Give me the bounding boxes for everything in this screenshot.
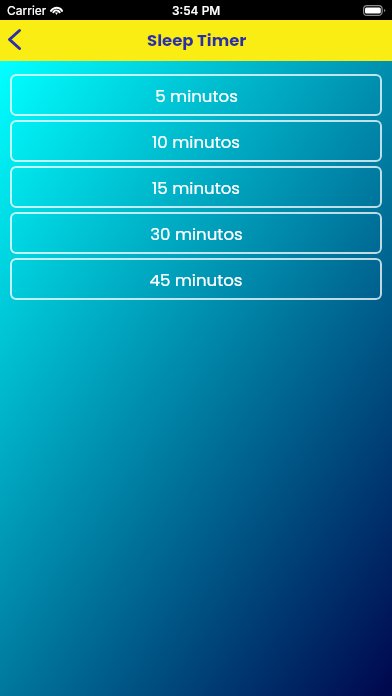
staticText: 30 minutos: [150, 223, 243, 246]
button[interactable]: Back: [0, 22, 38, 60]
staticText: 45 minutos: [149, 269, 243, 292]
staticText: 15 minutos: [152, 177, 240, 200]
staticText: Carrier: [7, 3, 47, 18]
button[interactable]: 10 minutos: [10, 120, 382, 162]
button[interactable]: 30 minutos: [10, 212, 382, 254]
staticText: 3:54 PM: [172, 3, 221, 18]
staticText: 5 minutos: [155, 85, 238, 108]
button[interactable]: 5 minutos: [10, 74, 382, 116]
button[interactable]: 45 minutos: [10, 258, 382, 300]
button[interactable]: 15 minutos: [10, 166, 382, 208]
staticText: 10 minutos: [152, 131, 240, 154]
staticText: Sleep Timer: [147, 29, 247, 52]
